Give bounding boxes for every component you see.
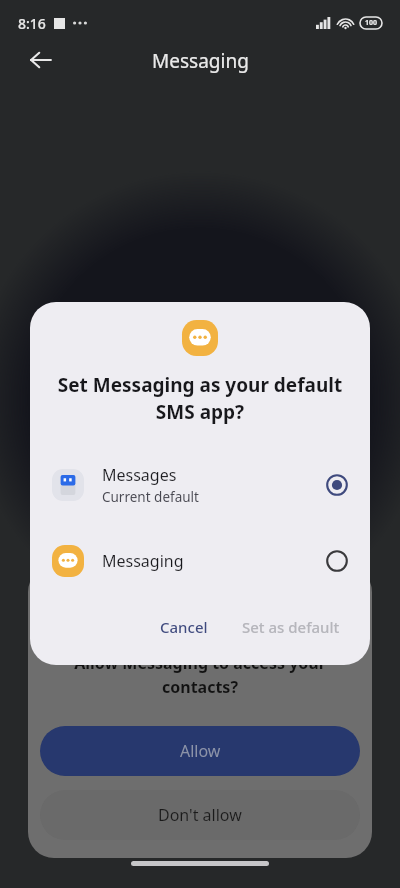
- staticText: Current default: [102, 488, 199, 506]
- button[interactable]: Don't allow: [40, 790, 360, 840]
- button[interactable]: Messages: [30, 447, 370, 523]
- staticText: Messaging: [152, 48, 249, 74]
- staticText: Allow Messaging to access your contacts?: [46, 652, 354, 698]
- button[interactable]: Messaging: [30, 523, 370, 599]
- button[interactable]: Set as default: [234, 609, 348, 645]
- button[interactable]: Back: [18, 37, 64, 83]
- staticText: Messaging: [102, 550, 184, 572]
- staticText: 100: [365, 18, 378, 28]
- staticText: Cancel: [160, 617, 208, 637]
- staticText: Set as default: [242, 617, 340, 637]
- staticText: Allow: [180, 740, 221, 762]
- staticText: Messages: [102, 464, 177, 486]
- staticText: 8:16: [18, 14, 46, 33]
- staticText: Don't allow: [158, 804, 242, 826]
- staticText: Set Messaging as your default SMS app?: [56, 372, 344, 425]
- button[interactable]: Cancel: [148, 609, 220, 645]
- button[interactable]: Allow: [40, 726, 360, 776]
